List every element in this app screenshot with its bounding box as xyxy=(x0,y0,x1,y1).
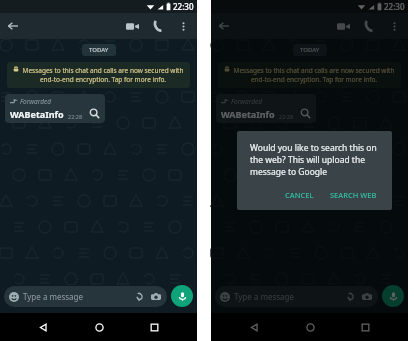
staticText: TODAY xyxy=(300,46,320,54)
button[interactable]: CANCEL xyxy=(280,187,319,203)
button[interactable]: Home xyxy=(86,314,112,340)
button[interactable]: Attach xyxy=(133,290,146,303)
button[interactable]: Video call xyxy=(119,13,145,39)
button[interactable]: Type a message xyxy=(4,286,167,307)
staticText: Forwarded xyxy=(231,97,262,106)
button[interactable]: Back xyxy=(0,13,26,39)
button[interactable]: Video call xyxy=(330,13,356,39)
button[interactable]: SEARCH WEB xyxy=(325,187,382,203)
staticText: 22:28 xyxy=(279,113,294,120)
staticText: SEARCH WEB xyxy=(330,190,377,200)
button[interactable]: Type a message xyxy=(215,286,378,307)
button[interactable]: More options xyxy=(382,14,406,38)
staticText: Type a message xyxy=(234,291,295,302)
button[interactable]: Record voice message xyxy=(171,285,193,307)
button[interactable]: Voice call xyxy=(356,13,382,39)
staticText: Would you like to search this on the web… xyxy=(250,142,382,178)
staticText: Messages to this chat and calls are now … xyxy=(22,66,184,84)
staticText: Type a message xyxy=(23,291,84,302)
button[interactable]: Back xyxy=(30,314,56,340)
staticText: WABetaInfo xyxy=(221,108,275,120)
staticText: Messages to this chat and calls are now … xyxy=(233,66,395,84)
button[interactable]: Search message on web xyxy=(88,107,101,120)
staticText: Forwarded xyxy=(20,97,51,106)
button[interactable]: More options xyxy=(171,14,195,38)
button[interactable]: Attach xyxy=(344,290,357,303)
button[interactable]: Forwarded xyxy=(5,94,105,123)
button[interactable]: Messages to this chat and calls are now … xyxy=(7,62,190,88)
button[interactable]: Voice call xyxy=(145,13,171,39)
button[interactable]: Back xyxy=(241,314,267,340)
button[interactable]: Camera xyxy=(360,290,373,303)
staticText: 22:30 xyxy=(173,1,194,12)
button[interactable]: Forwarded xyxy=(216,94,316,123)
button[interactable]: Messages to this chat and calls are now … xyxy=(218,62,401,88)
button[interactable]: Search message on web xyxy=(299,107,312,120)
staticText: TODAY xyxy=(89,46,109,54)
button[interactable]: Camera xyxy=(149,290,162,303)
button[interactable]: Home xyxy=(297,314,323,340)
button[interactable]: Record voice message xyxy=(382,285,404,307)
staticText: 22:28 xyxy=(68,113,83,120)
staticText: 22:30 xyxy=(384,1,405,12)
button[interactable]: Recents xyxy=(352,314,378,340)
staticText: CANCEL xyxy=(285,190,314,200)
button[interactable]: Recents xyxy=(141,314,167,340)
button[interactable]: Back xyxy=(211,13,237,39)
staticText: WABetaInfo xyxy=(10,108,64,120)
